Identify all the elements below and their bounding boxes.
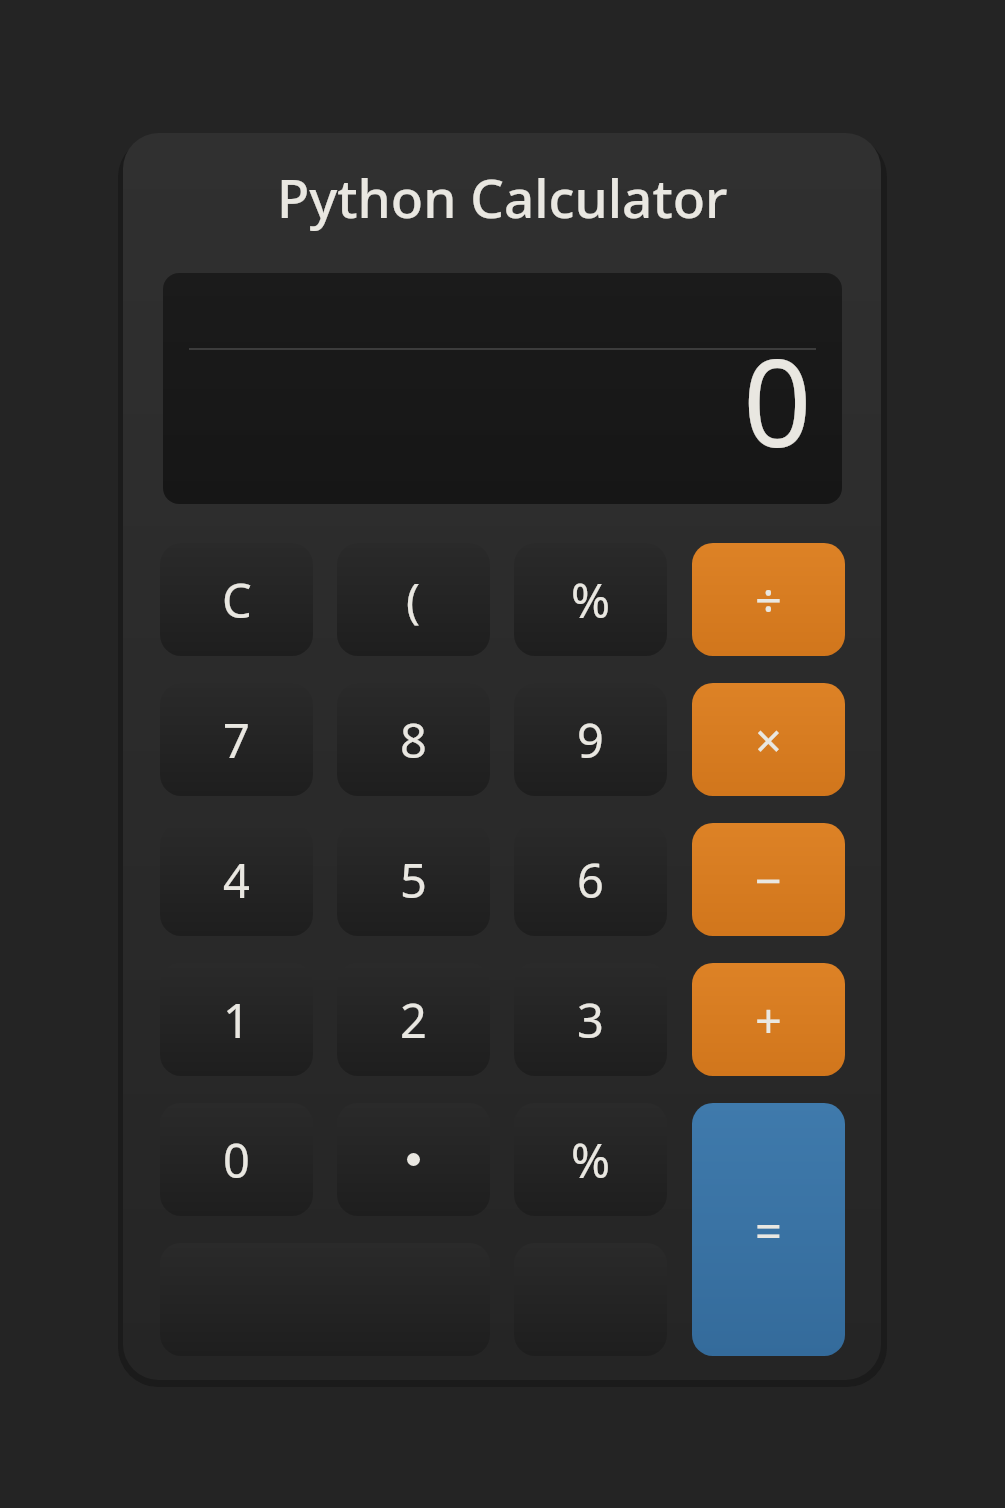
button[interactable]: Multiply — [692, 683, 845, 796]
button[interactable]: Blank key — [160, 1243, 490, 1356]
staticText: % — [571, 1128, 611, 1192]
staticText: 1 — [223, 988, 250, 1052]
button[interactable]: Plus — [692, 963, 845, 1076]
button[interactable]: C — [160, 543, 313, 656]
staticText: Python Calculator — [277, 161, 728, 233]
staticText: ÷ — [755, 568, 782, 632]
staticText: 7 — [223, 708, 250, 772]
staticText: ( — [406, 568, 421, 632]
button[interactable]: % — [514, 543, 667, 656]
button[interactable]: 1 — [160, 963, 313, 1076]
button[interactable]: Divide — [692, 543, 845, 656]
button[interactable]: 3 — [514, 963, 667, 1076]
button[interactable]: Minus — [692, 823, 845, 936]
button[interactable]: 8 — [337, 683, 490, 796]
staticText: 6 — [577, 848, 604, 912]
staticText: 2 — [400, 988, 427, 1052]
button[interactable]: % — [514, 1103, 667, 1216]
button[interactable]: 5 — [337, 823, 490, 936]
button[interactable]: 6 — [514, 823, 667, 936]
button[interactable]: ( — [337, 543, 490, 656]
button[interactable]: Equals — [692, 1103, 845, 1356]
button[interactable]: 7 — [160, 683, 313, 796]
staticText: = — [755, 1198, 782, 1262]
button[interactable]: Decimal point — [337, 1103, 490, 1216]
staticText: 3 — [577, 988, 604, 1052]
button[interactable]: 0 — [160, 1103, 313, 1216]
staticText: − — [755, 848, 782, 912]
button[interactable]: 4 — [160, 823, 313, 936]
staticText: + — [755, 988, 782, 1052]
button[interactable]: 2 — [337, 963, 490, 1076]
button[interactable]: Blank key — [514, 1243, 667, 1356]
staticText: 0 — [743, 319, 812, 482]
staticText: × — [755, 708, 782, 772]
staticText: % — [571, 568, 611, 632]
staticText: 8 — [400, 708, 427, 772]
staticText: C — [222, 568, 252, 632]
staticText: 9 — [577, 708, 604, 772]
button[interactable]: 9 — [514, 683, 667, 796]
button[interactable]: Display — [163, 273, 842, 504]
staticText: 4 — [223, 848, 250, 912]
staticText: 5 — [400, 848, 427, 912]
staticText: 0 — [223, 1128, 250, 1192]
